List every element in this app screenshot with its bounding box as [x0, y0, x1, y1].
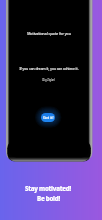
staticText: (Zig Ziglar): [42, 78, 55, 82]
staticText: Motivational quote for you: [27, 31, 71, 36]
button[interactable]: Got it!: [41, 113, 55, 122]
staticText: Stay motivated!: [25, 184, 71, 192]
staticText: Got it!: [43, 115, 54, 120]
staticText: If you can dream it, you can achieve it.: [19, 66, 79, 70]
staticText: Be bold!: [37, 194, 60, 202]
